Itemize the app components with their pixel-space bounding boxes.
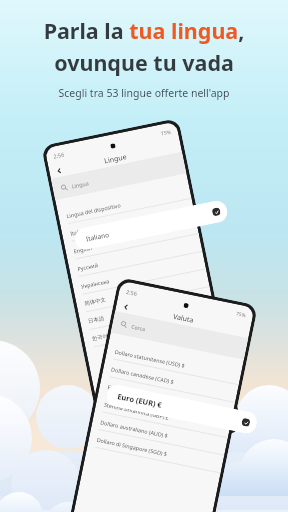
button[interactable]: Italiano xyxy=(60,199,195,243)
staticText: Italiano xyxy=(69,226,90,237)
staticText: Italiano xyxy=(85,230,110,243)
button[interactable]: Dollaro statunitense (USD) $ xyxy=(105,340,242,385)
button[interactable]: Euro (EUR) € xyxy=(98,376,235,421)
button[interactable]: Dollaro canadese (CAD) $ xyxy=(102,358,239,403)
button[interactable]: English xyxy=(64,216,199,261)
staticText: Українська xyxy=(80,277,110,290)
staticText: Lingua xyxy=(71,179,90,190)
staticText: 75% xyxy=(235,310,246,319)
button[interactable]: 日本語 xyxy=(78,287,213,331)
button[interactable]: Back xyxy=(52,164,66,178)
staticText: Dollaro di Singapore (SGD) $ xyxy=(96,436,168,457)
button[interactable]: Euro (EUR) € xyxy=(105,383,259,435)
staticText: Parla la tua lingua, xyxy=(0,16,288,45)
other: Selected xyxy=(211,207,221,216)
staticText: Cerca xyxy=(131,323,147,332)
staticText: 한국어 xyxy=(91,332,109,343)
staticText: 2:56 xyxy=(53,151,65,160)
staticText: Dollaro statunitense (USD) $ xyxy=(114,348,186,369)
button[interactable]: Cerca xyxy=(111,311,248,360)
button[interactable]: Italiano xyxy=(73,199,229,251)
button[interactable]: Lingua xyxy=(51,152,186,200)
staticText: ovunque tu vada xyxy=(0,48,288,77)
staticText: Dollaro australiano (AUD) $ xyxy=(100,418,169,439)
staticText: Dollaro canadese (CAD) $ xyxy=(111,365,175,385)
button[interactable]: Lingua del dispositivo xyxy=(57,181,192,226)
button[interactable]: Русский xyxy=(68,234,203,279)
staticText: English xyxy=(73,244,93,254)
staticText: 简体中文 xyxy=(84,296,107,307)
button[interactable]: Українська xyxy=(71,252,206,296)
staticText: Lingue xyxy=(103,152,128,166)
button[interactable]: 한국어 xyxy=(82,305,217,349)
button[interactable]: Sterlina britannica (GBP) £ xyxy=(95,393,231,438)
staticText: Русский xyxy=(77,261,99,272)
staticText: 日本語 xyxy=(88,315,106,325)
button[interactable]: Dollaro australiano (AUD) $ xyxy=(91,411,228,456)
staticText: Sterlina britannica (GBP) £ xyxy=(103,401,170,421)
other: Selected xyxy=(241,418,251,427)
staticText: Scegli tra 53 lingue offerte nell'app xyxy=(0,86,288,100)
button[interactable]: 简体中文 xyxy=(75,269,210,314)
staticText: Valuta xyxy=(172,312,195,326)
staticText: Euro (EUR) € xyxy=(117,391,164,410)
staticText: 75% xyxy=(160,129,172,138)
staticText: Lingua del dispositivo xyxy=(66,201,121,219)
button[interactable]: Dollaro di Singapore (SGD) $ xyxy=(87,428,224,473)
button[interactable]: Back xyxy=(119,300,133,314)
staticText: Euro (EUR) € xyxy=(107,383,140,396)
staticText: 2:56 xyxy=(126,288,138,297)
